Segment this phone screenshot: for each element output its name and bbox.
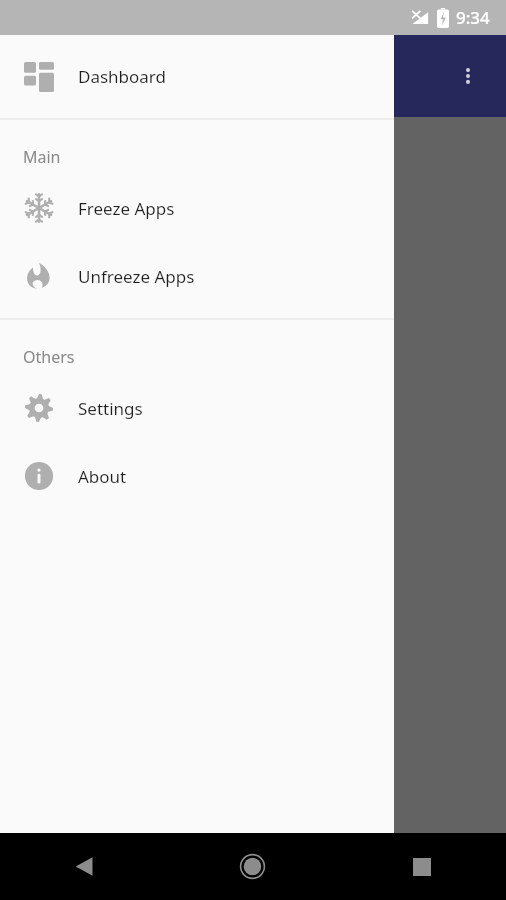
- button[interactable]: Dashboard: [0, 35, 394, 118]
- button[interactable]: Freeze Apps: [0, 174, 394, 242]
- staticText: Main: [23, 146, 61, 168]
- button[interactable]: Unfreeze Apps: [0, 242, 394, 310]
- button[interactable]: Recent apps: [337, 833, 506, 900]
- button[interactable]: About: [0, 442, 394, 510]
- staticText: Freeze Apps: [78, 197, 175, 220]
- button[interactable]: More options: [444, 52, 492, 100]
- staticText: Unfreeze Apps: [78, 265, 195, 288]
- button[interactable]: Settings: [0, 374, 394, 442]
- staticText: Settings: [78, 397, 143, 420]
- staticText: About: [78, 465, 127, 488]
- button[interactable]: Home: [168, 833, 337, 900]
- button[interactable]: Back: [0, 833, 168, 900]
- staticText: Others: [23, 346, 75, 368]
- staticText: Dashboard: [78, 65, 167, 88]
- staticText: 9:34: [456, 6, 490, 29]
